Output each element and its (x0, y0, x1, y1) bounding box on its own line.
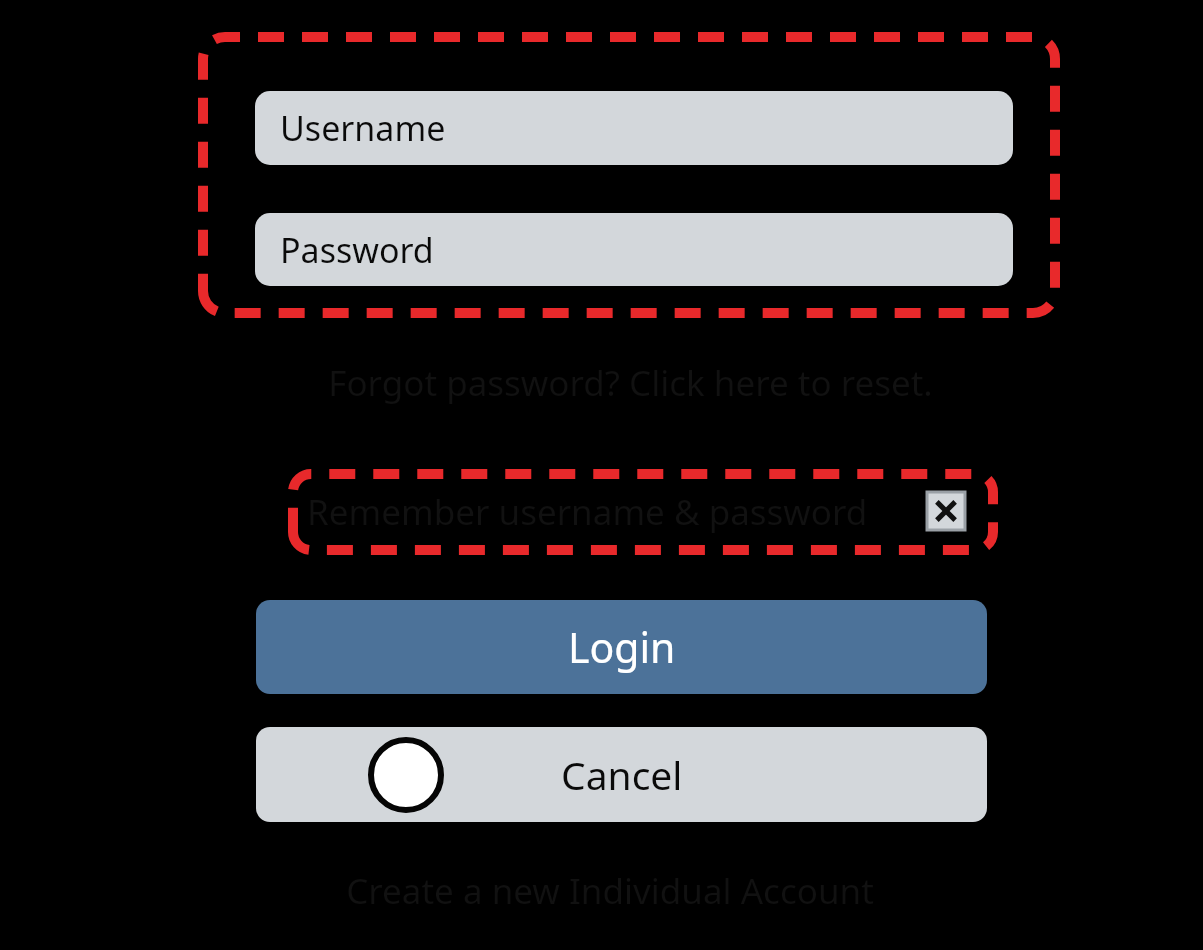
button[interactable]: Forgot password? Click here to reset. (280, 356, 980, 410)
button[interactable]: Login (256, 600, 987, 694)
button[interactable]: Remember username & password (288, 469, 998, 555)
button[interactable]: Password (255, 213, 1013, 286)
button[interactable]: Cancel (256, 727, 987, 822)
staticText: Username (280, 105, 446, 151)
staticText: Password (280, 227, 434, 273)
staticText: Cancel (561, 748, 683, 801)
button[interactable]: Credentials fields (198, 32, 1060, 318)
staticText: Forgot password? Click here to reset. (328, 359, 933, 407)
staticText: Login (568, 619, 676, 675)
staticText: Create a new Individual Account (346, 867, 874, 915)
button[interactable]: Create a new Individual Account (280, 865, 940, 917)
staticText: Remember username & password (307, 488, 868, 536)
button[interactable]: Username (255, 91, 1013, 165)
